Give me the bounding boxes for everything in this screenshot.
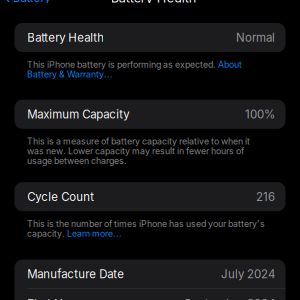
staticText: 100% — [245, 107, 275, 121]
staticText: First Use — [27, 297, 76, 300]
staticText: ‹ — [5, 0, 11, 7]
staticText: This is the number of times iPhone has u… — [27, 218, 265, 229]
staticText: Cycle Count — [27, 190, 94, 204]
staticText: 216 — [256, 190, 275, 204]
button[interactable]: Cycle Count — [14, 182, 285, 211]
staticText: Battery Health — [111, 0, 197, 6]
staticText: capacity. — [27, 228, 67, 239]
staticText: Normal — [236, 31, 275, 44]
button[interactable]: Manufacture Date — [14, 259, 285, 288]
staticText: usage between charges. — [27, 155, 127, 166]
staticText: Battery Health — [27, 31, 104, 44]
staticText: July 2024 — [221, 267, 275, 281]
staticText: Manufacture Date — [27, 267, 124, 281]
staticText: Battery — [12, 0, 50, 5]
staticText: About — [218, 59, 242, 70]
button[interactable]: Maximum Capacity — [14, 100, 285, 129]
button[interactable]: Battery Health — [14, 23, 285, 52]
staticText: This iPhone battery is performing as exp… — [27, 59, 218, 70]
staticText: Learn more... — [67, 228, 122, 239]
staticText: This is a measure of battery capacity re… — [27, 136, 250, 147]
staticText: Battery & Warranty... — [27, 69, 113, 79]
staticText: Maximum Capacity — [27, 107, 129, 121]
button[interactable]: First Use — [14, 289, 285, 300]
button[interactable]: ‹ — [0, 0, 50, 7]
staticText: September 2024 — [184, 297, 275, 300]
staticText: was new. Lower capacity may result in fe… — [27, 146, 244, 156]
